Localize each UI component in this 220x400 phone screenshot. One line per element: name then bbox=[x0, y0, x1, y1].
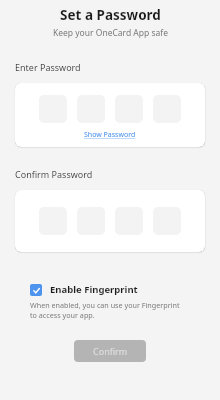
staticText: Confirm Password bbox=[15, 168, 93, 180]
staticText: Enable Fingerprint bbox=[50, 283, 138, 296]
staticText: Show Password bbox=[84, 130, 136, 140]
staticText: Enter Password bbox=[15, 61, 81, 73]
staticText: When enabled, you can use your Fingerpri… bbox=[30, 300, 180, 320]
staticText: Keep your OneCard App safe bbox=[53, 27, 168, 39]
button[interactable]: Show Password bbox=[80, 129, 140, 141]
staticText: Confirm bbox=[93, 345, 128, 357]
button[interactable]: Enable Fingerprint bbox=[30, 283, 138, 296]
button[interactable]: Confirm bbox=[74, 340, 146, 362]
staticText: Set a Password bbox=[60, 6, 161, 24]
